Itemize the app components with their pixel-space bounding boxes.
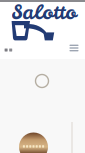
button[interactable]: English [9, 48, 12, 51]
button[interactable]: Menu [66, 41, 81, 54]
button[interactable]: Italiano [5, 48, 8, 51]
staticText: Salotto [11, 0, 76, 25]
